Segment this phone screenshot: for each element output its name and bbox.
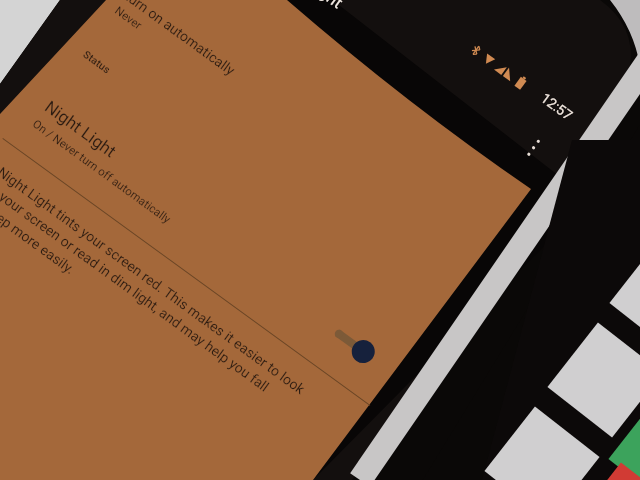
button[interactable]: Night Light: [1, 72, 424, 407]
button[interactable]: More options: [513, 130, 552, 169]
staticText: turn on automatically: [122, 0, 238, 79]
button[interactable]: Night Light toggle: [323, 315, 394, 381]
staticText: Night Light: [268, 0, 347, 12]
staticText: Night Light tints your screen red. This …: [0, 164, 318, 435]
staticText: Night Light: [41, 96, 120, 161]
button[interactable]: turn on automatically: [92, 0, 507, 282]
staticText: 12:57: [538, 90, 576, 123]
staticText: Status: [81, 48, 113, 76]
staticText: On / Never turn off automatically: [31, 117, 173, 225]
staticText: Never: [113, 3, 145, 32]
